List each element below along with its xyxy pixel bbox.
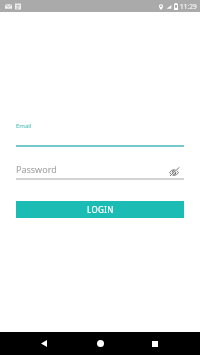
button[interactable]: LOGIN bbox=[16, 201, 184, 218]
button[interactable]: Recents bbox=[142, 332, 168, 355]
staticText: Email bbox=[16, 122, 32, 130]
button[interactable]: Email bbox=[16, 118, 184, 147]
button[interactable]: Show password bbox=[168, 165, 181, 177]
button[interactable]: Back bbox=[31, 332, 57, 355]
staticText: Password bbox=[16, 163, 57, 175]
button[interactable]: Home bbox=[87, 332, 113, 355]
staticText: LOGIN bbox=[87, 204, 114, 215]
staticText: 11:29 bbox=[180, 2, 197, 11]
